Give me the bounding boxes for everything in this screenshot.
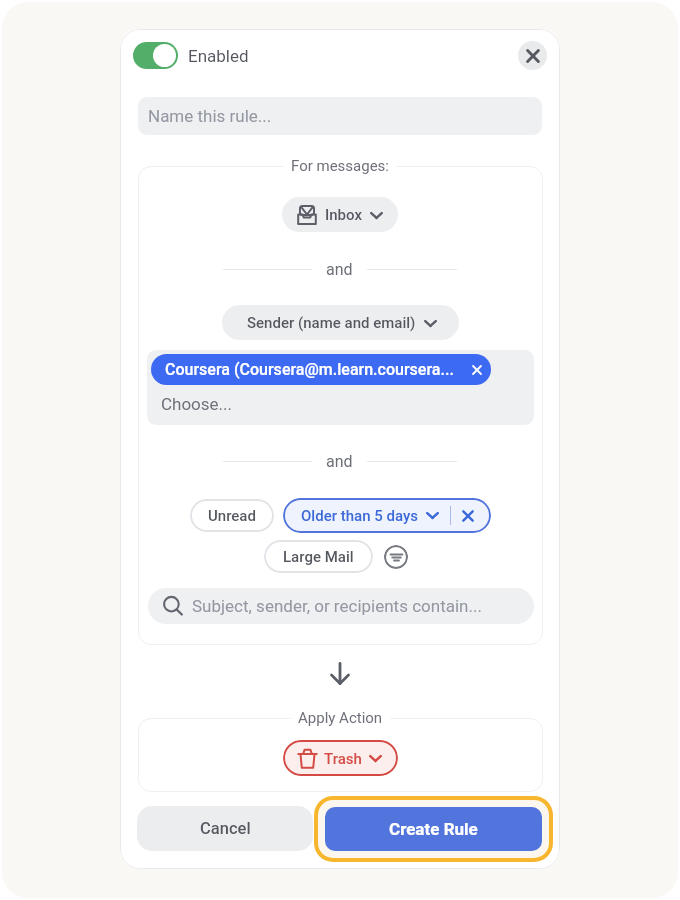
- staticText: Sender (name and email): [247, 314, 416, 332]
- staticText: Unread: [208, 507, 256, 525]
- button[interactable]: Subject, sender, or recipients contain..…: [148, 588, 534, 624]
- button[interactable]: More filters: [384, 545, 408, 569]
- staticText: Coursera (Coursera@m.learn.coursera...: [165, 360, 454, 379]
- button[interactable]: Coursera (Coursera@m.learn.coursera...: [147, 350, 534, 425]
- staticText: Inbox: [325, 206, 362, 224]
- staticText: Name this rule...: [148, 106, 272, 126]
- staticText: For messages:: [291, 157, 389, 175]
- button[interactable]: Sender (name and email): [222, 305, 459, 340]
- staticText: Subject, sender, or recipients contain..…: [192, 596, 482, 616]
- staticText: and: [326, 260, 353, 278]
- button[interactable]: Enabled toggle: [133, 42, 178, 69]
- button[interactable]: Large Mail: [264, 540, 373, 573]
- button[interactable]: Unread: [190, 499, 274, 532]
- staticText: Older than 5 days: [301, 507, 419, 525]
- staticText: Choose...: [161, 394, 233, 414]
- button[interactable]: Trash: [283, 740, 398, 776]
- button[interactable]: Coursera (Coursera@m.learn.coursera...: [151, 354, 491, 385]
- button[interactable]: Close: [518, 41, 547, 70]
- staticText: Create Rule: [389, 819, 478, 839]
- button[interactable]: Cancel: [137, 806, 313, 851]
- staticText: and: [326, 452, 353, 470]
- button[interactable]: Create Rule: [325, 807, 542, 851]
- button[interactable]: Inbox: [282, 197, 398, 232]
- button[interactable]: Older than 5 days: [283, 498, 491, 533]
- staticText: Cancel: [200, 819, 251, 838]
- staticText: Apply Action: [298, 709, 383, 727]
- staticText: Trash: [324, 750, 362, 768]
- staticText: Enabled: [188, 46, 249, 66]
- staticText: Large Mail: [283, 548, 354, 566]
- button[interactable]: Name this rule...: [138, 97, 542, 135]
